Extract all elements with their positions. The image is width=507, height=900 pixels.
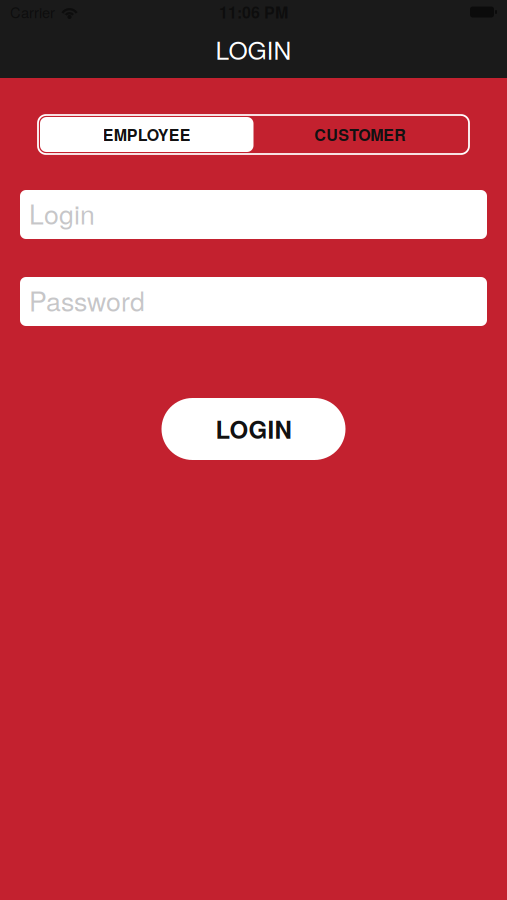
staticText: Password [29,281,145,319]
staticText: LOGIN [215,412,291,446]
staticText: LOGIN [215,31,291,67]
staticText: Login [29,194,95,232]
staticText: Carrier [10,1,55,22]
button[interactable]: Password [20,277,487,326]
staticText: 11:06 PM [219,0,288,23]
button[interactable]: Login [20,190,487,239]
button[interactable]: CUSTOMER [253,117,467,152]
button[interactable]: LOGIN [161,398,345,460]
staticText: EMPLOYEE [103,123,191,146]
button[interactable]: EMPLOYEE [40,117,253,152]
staticText: CUSTOMER [314,123,406,146]
